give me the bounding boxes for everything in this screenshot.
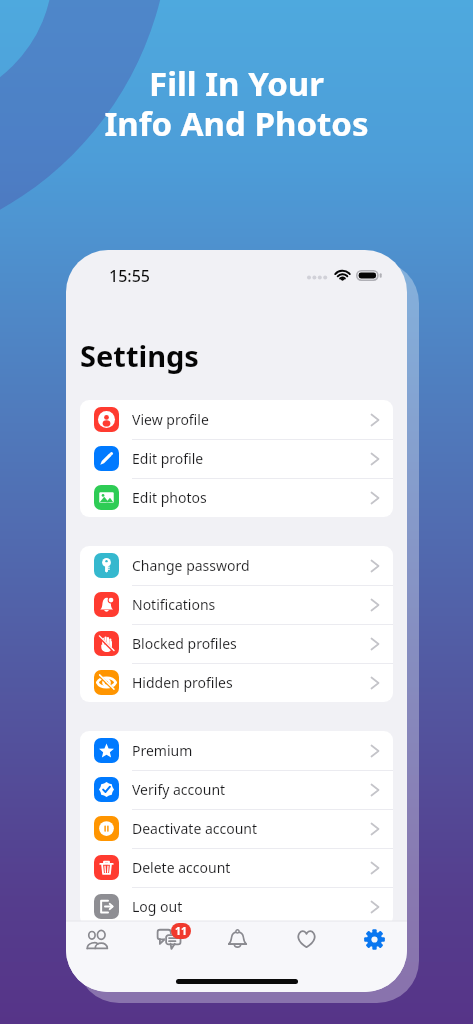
staticText: Change password bbox=[132, 556, 371, 575]
staticText: Fill In Your Info And Photos bbox=[0, 61, 473, 145]
staticText: Edit photos bbox=[132, 488, 371, 507]
button[interactable]: Likes bbox=[284, 917, 328, 961]
button[interactable]: Notifications bbox=[215, 917, 259, 961]
button[interactable]: View profile bbox=[80, 400, 393, 439]
staticText: 15:55 bbox=[109, 265, 150, 287]
staticText: Edit profile bbox=[132, 449, 371, 468]
staticText: Verify account bbox=[132, 780, 371, 799]
button[interactable]: Messages bbox=[147, 917, 191, 961]
staticText: View profile bbox=[132, 410, 371, 429]
staticText: Settings bbox=[80, 336, 199, 375]
button[interactable]: People bbox=[78, 917, 122, 961]
button[interactable]: Deactivate account bbox=[80, 809, 393, 848]
button[interactable]: Hidden profiles bbox=[80, 663, 393, 702]
button[interactable]: Notifications bbox=[80, 585, 393, 624]
staticText: Delete account bbox=[132, 858, 371, 877]
button[interactable]: Delete account bbox=[80, 848, 393, 887]
staticText: Log out bbox=[132, 897, 371, 916]
button[interactable]: Log out bbox=[80, 887, 393, 926]
button[interactable]: Change password bbox=[80, 546, 393, 585]
button[interactable]: Settings bbox=[352, 917, 396, 961]
button[interactable]: Blocked profiles bbox=[80, 624, 393, 663]
staticText: Blocked profiles bbox=[132, 634, 371, 653]
staticText: 11 bbox=[175, 924, 188, 938]
button[interactable]: Premium bbox=[80, 731, 393, 770]
button[interactable]: Verify account bbox=[80, 770, 393, 809]
button[interactable]: Edit profile bbox=[80, 439, 393, 478]
staticText: Deactivate account bbox=[132, 819, 371, 838]
staticText: Hidden profiles bbox=[132, 673, 371, 692]
staticText: Notifications bbox=[132, 595, 371, 614]
staticText: Premium bbox=[132, 741, 371, 760]
button[interactable]: Edit photos bbox=[80, 478, 393, 517]
